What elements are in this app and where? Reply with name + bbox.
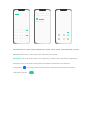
button[interactable]: Sensors demo screen: [13, 9, 30, 44]
staticText: to open the permission panel and grant a…: [26, 66, 76, 69]
staticText: Sensors let the app react to motion, whi…: [13, 57, 79, 64]
staticText: Now tap: [13, 66, 23, 69]
button[interactable]: Open permission panel: [23, 66, 26, 69]
button[interactable]: Manage rules: [13, 71, 34, 74]
staticText: Manage rules: [13, 71, 28, 74]
staticText: Developers can build powerful apps that …: [13, 48, 79, 55]
button[interactable]: App grid screen: [55, 9, 72, 44]
button[interactable]: Rules list screen: [34, 9, 51, 44]
